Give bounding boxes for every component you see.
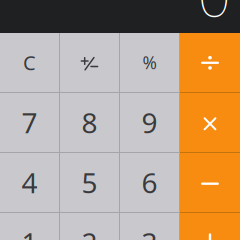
staticText: 8 [81,104,97,141]
button[interactable]: 9 [120,93,179,152]
button[interactable]: 7 [0,93,59,152]
button[interactable]: 2 [60,213,119,240]
button[interactable]: C [0,33,59,92]
button[interactable]: 3 [120,213,179,240]
button[interactable]: 1 [0,213,59,240]
button[interactable]: Subtract [180,153,240,212]
button[interactable]: Divide [180,33,240,92]
staticText: 1 [21,224,37,240]
button[interactable]: 5 [60,153,119,212]
button[interactable]: 6 [120,153,179,212]
staticText: 4 [21,164,37,201]
button[interactable]: 4 [0,153,59,212]
staticText: 9 [141,104,157,141]
button[interactable]: Plus minus [60,33,119,92]
staticText: 3 [141,224,157,240]
button[interactable]: Add [180,213,240,240]
staticText: 7 [21,104,37,141]
staticText: % [142,51,156,74]
staticText: 5 [81,164,97,201]
staticText: 6 [141,164,157,201]
staticText: 2 [81,224,97,240]
staticText: C [23,49,36,76]
staticText: 0 [197,0,230,33]
button[interactable]: % [120,33,179,92]
button[interactable]: 8 [60,93,119,152]
button[interactable]: Multiply [180,93,240,152]
